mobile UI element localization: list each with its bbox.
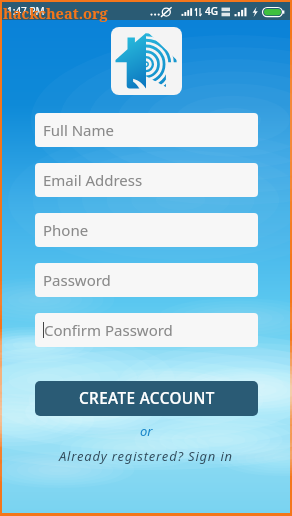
- staticText: 4G: [205, 4, 218, 18]
- staticText: Email Address: [43, 170, 143, 190]
- staticText: or: [140, 422, 153, 440]
- button[interactable]: Full Name: [35, 113, 258, 147]
- button[interactable]: Email Address: [35, 163, 258, 197]
- button[interactable]: Already registered? Sign in: [59, 447, 233, 465]
- staticText: Full Name: [43, 120, 114, 140]
- staticText: CREATE ACCOUNT: [79, 388, 215, 409]
- staticText: hackcheat.org: [3, 3, 108, 23]
- staticText: Already registered? Sign in: [59, 447, 233, 465]
- staticText: Phone: [43, 220, 89, 240]
- button[interactable]: Confirm Password: [35, 313, 258, 347]
- button[interactable]: Password: [35, 263, 258, 297]
- staticText: Confirm Password: [44, 320, 173, 340]
- staticText: 1:47 PM: [7, 4, 45, 18]
- button[interactable]: Phone: [35, 213, 258, 247]
- staticText: Password: [43, 270, 111, 290]
- button[interactable]: CREATE ACCOUNT: [35, 381, 258, 416]
